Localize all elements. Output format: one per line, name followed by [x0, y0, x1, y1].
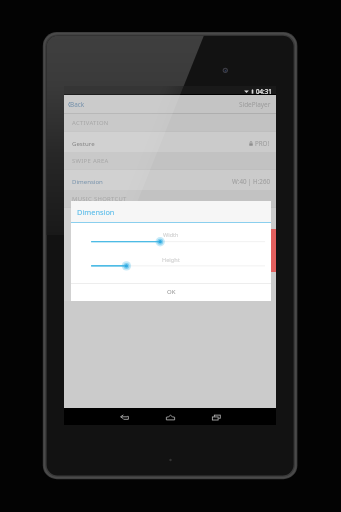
- button[interactable]: Back: [64, 97, 91, 112]
- button[interactable]: Dimension: [64, 170, 276, 191]
- button[interactable]: Gesture: [64, 132, 276, 153]
- staticText: Height: [162, 256, 180, 264]
- staticText: SidePlayer: [239, 100, 271, 109]
- staticText: PRO!: [255, 139, 270, 147]
- staticText: Dimension: [72, 177, 103, 185]
- staticText: Dimension: [77, 207, 115, 217]
- button[interactable]: Recent apps: [208, 409, 224, 425]
- button[interactable]: Home: [162, 409, 178, 425]
- staticText: 04:31: [256, 87, 272, 95]
- staticText: MUSIC SHORTCUT: [72, 195, 127, 203]
- staticText: SWIPE AREA: [72, 157, 109, 165]
- staticText: Back: [70, 100, 85, 109]
- staticText: Gesture: [72, 139, 95, 147]
- button[interactable]: Back: [116, 409, 132, 425]
- staticText: ACTIVATION: [72, 119, 109, 127]
- staticText: Width: [163, 231, 179, 239]
- staticText: OK: [167, 288, 176, 296]
- button[interactable]: OK: [71, 283, 271, 301]
- staticText: W:40 | H:260: [232, 177, 270, 185]
